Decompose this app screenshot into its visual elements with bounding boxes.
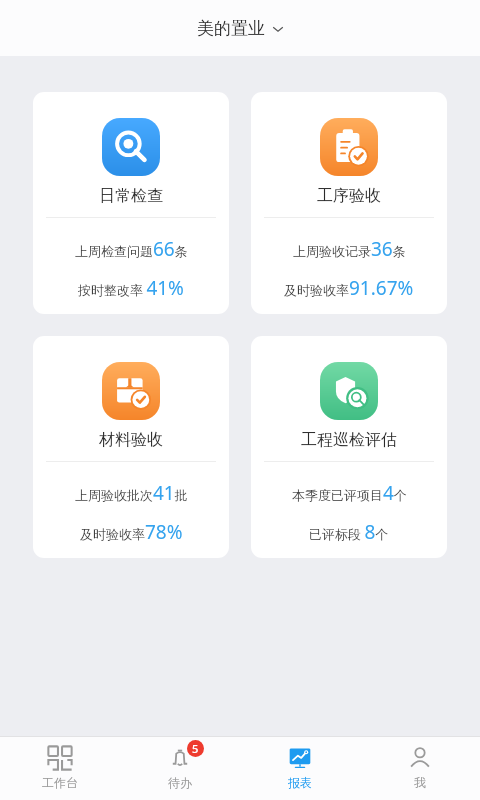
button[interactable]: 工序验收 [251, 92, 447, 314]
staticText: 上周检查问题66条 [75, 236, 188, 262]
button[interactable]: 待办 [120, 736, 240, 800]
staticText: 报表 [288, 775, 312, 790]
staticText: 工作台 [42, 775, 78, 790]
staticText: 及时验收率91.67% [284, 275, 414, 301]
staticText: 已评标段 8个 [309, 519, 389, 545]
staticText: 美的置业 [197, 18, 265, 39]
button[interactable]: 工作台 [0, 736, 120, 800]
staticText: 本季度已评项目4个 [292, 480, 407, 506]
staticText: 日常检查 [99, 186, 163, 206]
staticText: 工序验收 [317, 186, 381, 206]
staticText: 我 [414, 775, 426, 790]
button[interactable]: 日常检查 [33, 92, 229, 314]
button[interactable]: 工程巡检评估 [251, 336, 447, 558]
button[interactable]: 报表 [240, 736, 360, 800]
staticText: 材料验收 [99, 430, 163, 450]
button[interactable]: 材料验收 [33, 336, 229, 558]
staticText: 及时验收率78% [80, 519, 183, 545]
staticText: 按时整改率 41% [78, 275, 184, 301]
staticText: 上周验收记录36条 [293, 236, 406, 262]
staticText: 上周验收批次41批 [75, 480, 188, 506]
staticText: 工程巡检评估 [301, 430, 397, 450]
staticText: 待办 [168, 775, 192, 790]
button[interactable]: 我 [360, 736, 480, 800]
button[interactable]: 美的置业 [189, 14, 292, 43]
staticText: 5 [192, 741, 199, 756]
